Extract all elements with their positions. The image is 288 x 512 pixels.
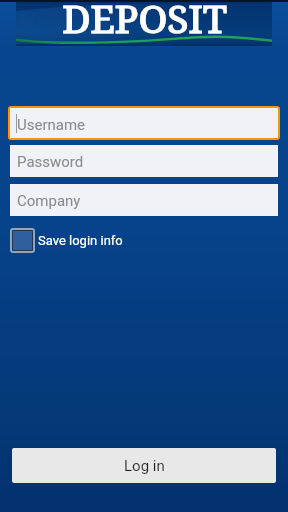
button[interactable]: Company bbox=[10, 184, 278, 216]
button[interactable]: Log in bbox=[12, 448, 276, 483]
staticText: Password bbox=[17, 153, 84, 171]
staticText: DEPOSIT bbox=[62, 0, 227, 37]
staticText: Username bbox=[17, 116, 86, 134]
button[interactable]: Save login info bbox=[10, 228, 123, 253]
button[interactable]: Password bbox=[10, 145, 278, 177]
staticText: Company bbox=[17, 192, 81, 210]
staticText: Log in bbox=[124, 457, 165, 475]
staticText: Save login info bbox=[38, 233, 123, 248]
button[interactable]: Username bbox=[10, 108, 278, 138]
